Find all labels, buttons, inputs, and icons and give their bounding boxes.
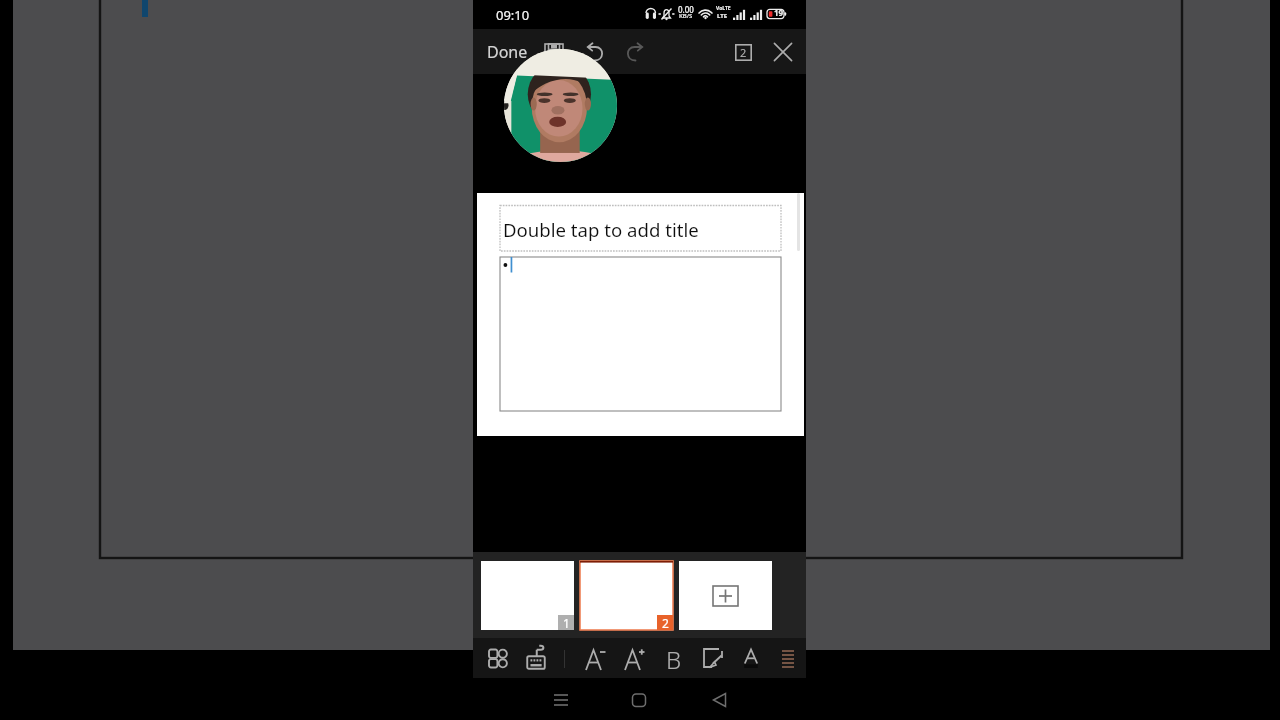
button[interactable]: Text color	[734, 639, 768, 679]
button[interactable]: Recents	[541, 678, 581, 720]
staticText: LTE	[717, 12, 728, 20]
staticText: B	[666, 643, 682, 676]
button[interactable]: 2	[580, 561, 673, 630]
button[interactable]: More options	[771, 639, 805, 679]
staticText: 2	[740, 45, 747, 60]
button[interactable]: Undo	[578, 35, 612, 69]
button[interactable]: Hide keyboard	[519, 639, 553, 679]
button[interactable]: Back	[700, 678, 740, 720]
staticText: 09:10	[496, 6, 530, 24]
staticText: 19	[774, 7, 784, 18]
button[interactable]: 1	[481, 561, 574, 630]
button[interactable]: Redo	[618, 35, 652, 69]
staticText: Done	[487, 41, 528, 63]
staticText: Double tap to add title	[503, 217, 699, 242]
button[interactable]: Decrease font size	[579, 639, 613, 679]
button[interactable]: Close	[766, 35, 800, 69]
button[interactable]: Bold	[657, 639, 691, 679]
staticText: KB/S	[679, 12, 693, 20]
button[interactable]: Slide layouts	[481, 639, 515, 679]
staticText: 1	[563, 615, 570, 630]
button[interactable]: Save	[537, 35, 571, 69]
button[interactable]: Shape style	[696, 639, 730, 679]
staticText: 0.00	[678, 4, 694, 15]
button[interactable]: Slides	[726, 35, 760, 69]
staticText: 2	[662, 615, 669, 630]
button[interactable]: Increase font size	[618, 639, 652, 679]
button[interactable]: Add slide	[679, 561, 772, 630]
button[interactable]: Home	[619, 678, 659, 720]
button[interactable]: Done	[481, 33, 534, 71]
staticText: VoLTE	[716, 5, 731, 12]
